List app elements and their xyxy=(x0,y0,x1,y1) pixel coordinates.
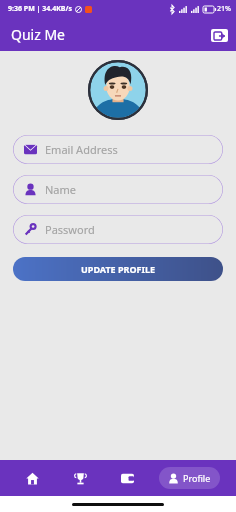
button[interactable]: Email Address xyxy=(13,135,223,164)
staticText: Name xyxy=(45,182,77,197)
button[interactable]: Logout xyxy=(208,24,230,46)
button[interactable]: Home xyxy=(16,462,48,494)
staticText: 9:36 PM | 34.4KB/s xyxy=(8,4,72,14)
button[interactable]: Password xyxy=(13,215,223,244)
staticText: Quiz Me xyxy=(11,25,66,44)
staticText: Password xyxy=(45,222,95,237)
button[interactable]: UPDATE PROFILE xyxy=(13,257,223,281)
button[interactable]: Wallet xyxy=(111,462,143,494)
staticText: Email Address xyxy=(45,142,118,157)
staticText: Profile xyxy=(183,472,211,484)
button[interactable]: Leaderboard xyxy=(64,462,96,494)
button[interactable]: Name xyxy=(13,175,223,204)
staticText: 21% xyxy=(217,4,231,14)
button[interactable]: Profile xyxy=(159,467,220,489)
staticText: UPDATE PROFILE xyxy=(81,263,156,275)
